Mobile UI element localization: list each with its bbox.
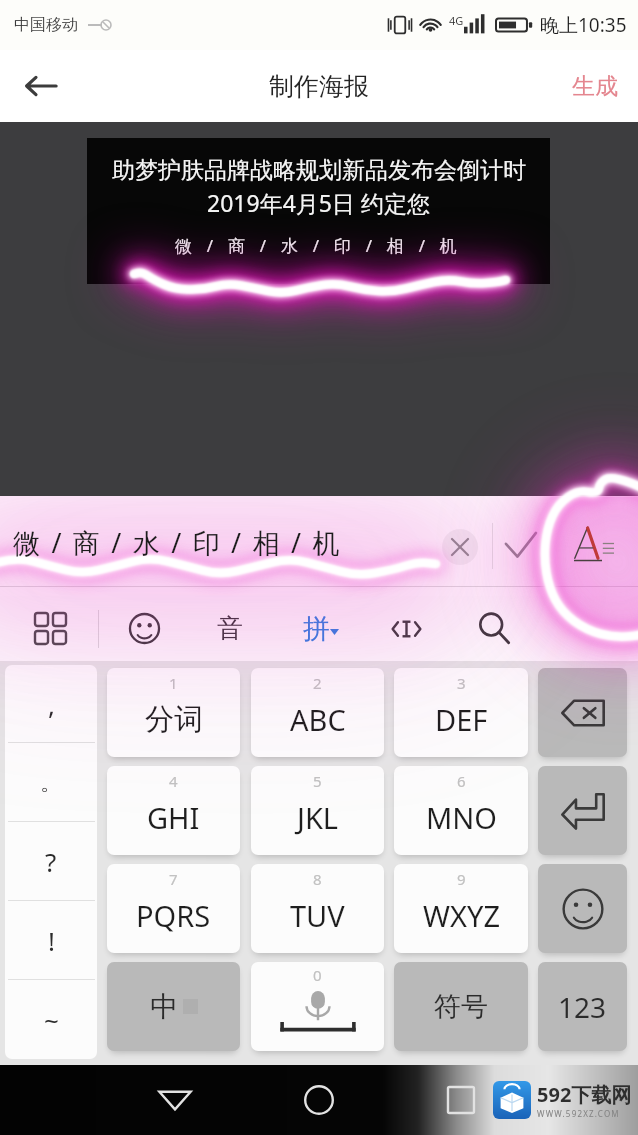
button[interactable]: Clear text [432, 519, 488, 575]
button[interactable]: 音 [196, 596, 264, 661]
button[interactable] [538, 668, 627, 757]
staticText: 。 [40, 769, 62, 797]
button[interactable]: 0 [251, 962, 384, 1051]
staticText: 7 [169, 869, 178, 889]
staticText: DEF [435, 700, 488, 739]
staticText: ABC [290, 700, 346, 739]
button[interactable]: , [5, 665, 97, 1059]
staticText: ! [48, 923, 55, 958]
button[interactable]: Recents [416, 1065, 506, 1135]
staticText: 中 [150, 989, 178, 1024]
staticText: 助梦护肤品牌战略规划新品发布会倒计时 [112, 156, 526, 185]
button[interactable]: 5 [251, 766, 384, 855]
staticText: 中国移动 [14, 15, 78, 35]
staticText: TUV [290, 896, 345, 935]
button[interactable]: 生成 [552, 50, 638, 122]
staticText: 分词 [145, 701, 203, 738]
staticText: 9 [457, 869, 466, 889]
staticText: 6 [457, 771, 466, 791]
staticText: ~ [44, 1002, 59, 1037]
staticText: 音 [217, 612, 243, 645]
staticText: 2019年4月5日 约定您 [207, 187, 430, 218]
staticText: PQRS [136, 896, 211, 935]
staticText: MNO [426, 798, 497, 837]
button[interactable]: 1 [107, 668, 240, 757]
button[interactable]: Back [10, 55, 72, 117]
staticText: 8 [313, 869, 322, 889]
staticText: ? [45, 844, 57, 879]
staticText: 4G [449, 13, 464, 28]
button[interactable]: 123 [538, 962, 627, 1051]
staticText: 微 / 商 / 水 / 印 / 相 / 机 [13, 524, 342, 561]
staticText: GHI [147, 798, 200, 837]
button[interactable]: 2 [251, 668, 384, 757]
button[interactable]: 7 [107, 864, 240, 953]
button[interactable]: 9 [394, 864, 528, 953]
button[interactable] [538, 766, 627, 855]
button[interactable]: 中 [107, 962, 240, 1051]
staticText: WWW.592XZ.COM [537, 1108, 620, 1119]
button[interactable]: Search [460, 596, 528, 661]
staticText: 592下载网 [537, 1081, 632, 1108]
button[interactable]: 8 [251, 864, 384, 953]
button[interactable]: Emoji [110, 596, 178, 661]
staticText: JKL [297, 798, 339, 837]
staticText: 5 [313, 771, 322, 791]
staticText: , [48, 687, 55, 722]
button[interactable]: Home [274, 1065, 364, 1135]
button[interactable]: 拼 [282, 596, 360, 661]
button[interactable]: Move cursor [372, 596, 440, 661]
staticText: 符号 [434, 990, 488, 1024]
button[interactable]: Keyboard layout [14, 596, 86, 661]
staticText: 2 [313, 673, 322, 693]
button[interactable]: 符号 [394, 962, 528, 1051]
button[interactable]: 3 [394, 668, 528, 757]
staticText: 微 / 商 / 水 / 印 / 相 / 机 [175, 234, 463, 257]
button[interactable]: 4 [107, 766, 240, 855]
staticText: 生成 [572, 72, 618, 101]
button[interactable]: Confirm [494, 521, 546, 573]
staticText: 123 [558, 988, 607, 1026]
button[interactable]: 6 [394, 766, 528, 855]
staticText: 4 [169, 771, 178, 791]
button[interactable]: Font style [558, 511, 628, 581]
staticText: 3 [457, 673, 466, 693]
staticText: WXYZ [423, 896, 500, 935]
button[interactable]: Back [130, 1065, 220, 1135]
staticText: 拼 [303, 612, 330, 646]
staticText: 1 [169, 673, 178, 693]
button[interactable] [538, 864, 627, 953]
staticText: 晚上10:35 [540, 12, 627, 38]
staticText: 0 [313, 965, 322, 985]
staticText: 制作海报 [269, 71, 369, 102]
